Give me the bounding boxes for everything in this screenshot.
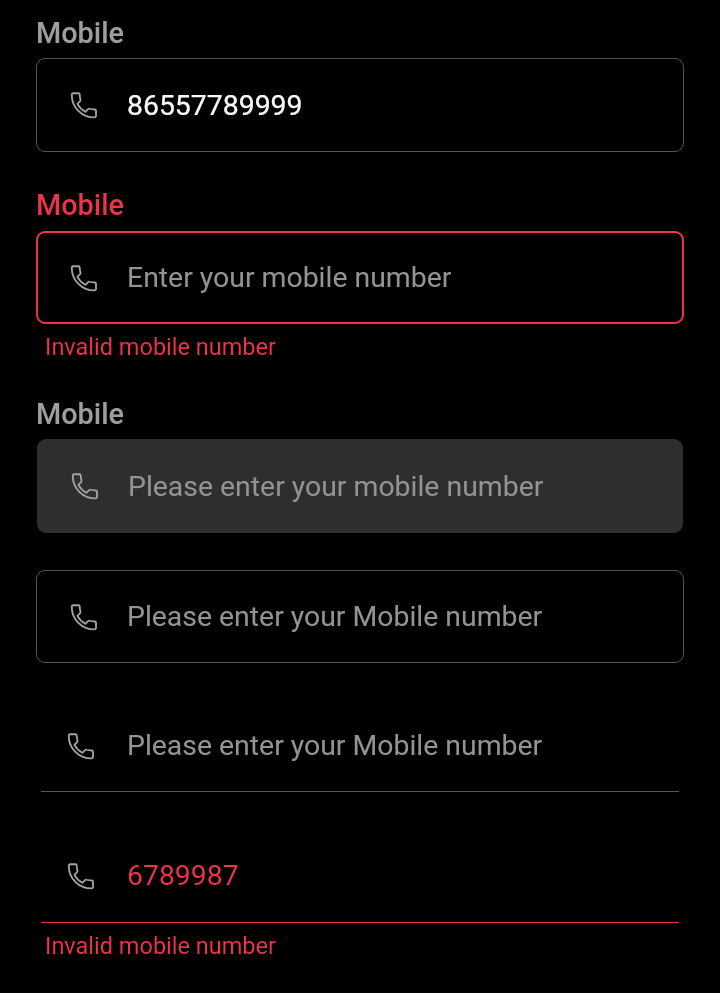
button[interactable]: Phone (37, 439, 683, 533)
staticText: Invalid mobile number (45, 932, 276, 960)
staticText: Please enter your Mobile number (127, 729, 543, 762)
staticText: Mobile (36, 16, 125, 50)
other: Phone (66, 861, 96, 891)
staticText: 86557789999 (127, 89, 303, 122)
other: Phone (69, 90, 99, 120)
staticText: Please enter your Mobile number (127, 600, 543, 633)
staticText: Invalid mobile number (45, 333, 276, 361)
other: Phone (66, 731, 96, 761)
staticText: Enter your mobile number (127, 261, 452, 294)
button[interactable]: Phone (41, 703, 679, 788)
staticText: Mobile (36, 397, 125, 431)
staticText: Please enter your mobile number (128, 470, 544, 503)
button[interactable]: Phone (36, 58, 684, 152)
button[interactable]: Phone (41, 833, 679, 918)
button[interactable]: Phone (36, 231, 684, 324)
staticText: 6789987 (127, 859, 239, 892)
other: Phone (69, 602, 99, 632)
other: Phone (69, 263, 99, 293)
button[interactable]: Phone (36, 570, 684, 663)
other: Phone (70, 471, 100, 501)
staticText: Mobile (36, 188, 125, 222)
